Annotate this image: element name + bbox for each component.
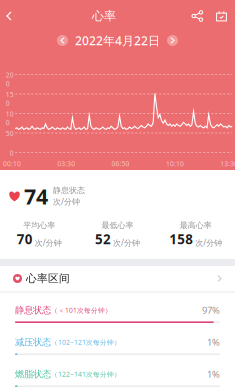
button[interactable]: Back — [0, 6, 20, 26]
staticText: 燃脂状态 — [15, 368, 51, 380]
staticText: （＜101次每分钟） — [51, 306, 112, 315]
staticText: 06:50 — [112, 159, 130, 168]
staticText: 静息状态 — [53, 185, 85, 195]
staticText: 次/分钟 — [113, 237, 140, 248]
button[interactable]: 静息状态 — [0, 293, 235, 325]
staticText: 1% — [207, 336, 220, 348]
staticText: 158 — [169, 230, 193, 248]
button[interactable]: 心率区间 — [0, 266, 235, 291]
staticText: 100 — [6, 109, 14, 127]
button[interactable]: 燃脂状态 — [0, 357, 235, 389]
staticText: 平均心率 — [23, 220, 55, 230]
staticText: 50 — [6, 129, 14, 138]
button[interactable]: Calendar — [207, 5, 235, 26]
staticText: 次/分钟 — [195, 237, 222, 248]
staticText: （122~141次每分钟） — [51, 370, 121, 379]
button[interactable]: Share — [188, 5, 207, 26]
staticText: 13:30 — [220, 159, 235, 168]
staticText: 2022年4月22日 — [75, 32, 160, 48]
staticText: （102~121次每分钟） — [51, 338, 121, 347]
button[interactable]: 减压状态 — [0, 325, 235, 357]
staticText: 减压状态 — [15, 336, 51, 348]
staticText: 03:30 — [57, 159, 75, 168]
staticText: 最低心率 — [101, 220, 133, 230]
staticText: 心率 — [92, 9, 116, 23]
staticText: 150 — [6, 90, 14, 108]
staticText: 1% — [207, 368, 220, 380]
staticText: 70 — [17, 230, 33, 248]
staticText: 74 — [24, 182, 48, 210]
staticText: 97% — [202, 304, 220, 316]
staticText: 心率区间 — [26, 272, 70, 285]
button[interactable]: Next day — [167, 35, 178, 46]
button[interactable]: Previous day — [57, 35, 68, 46]
staticText: 52 — [95, 230, 111, 248]
staticText: 0 — [10, 148, 14, 157]
staticText: 最高心率 — [180, 220, 212, 230]
staticText: 10:10 — [166, 159, 184, 168]
staticText: 次/分钟 — [53, 196, 80, 207]
staticText: 次/分钟 — [35, 237, 62, 248]
staticText: 静息状态 — [15, 304, 51, 316]
staticText: 200 — [6, 70, 14, 88]
staticText: 00:10 — [3, 159, 21, 168]
